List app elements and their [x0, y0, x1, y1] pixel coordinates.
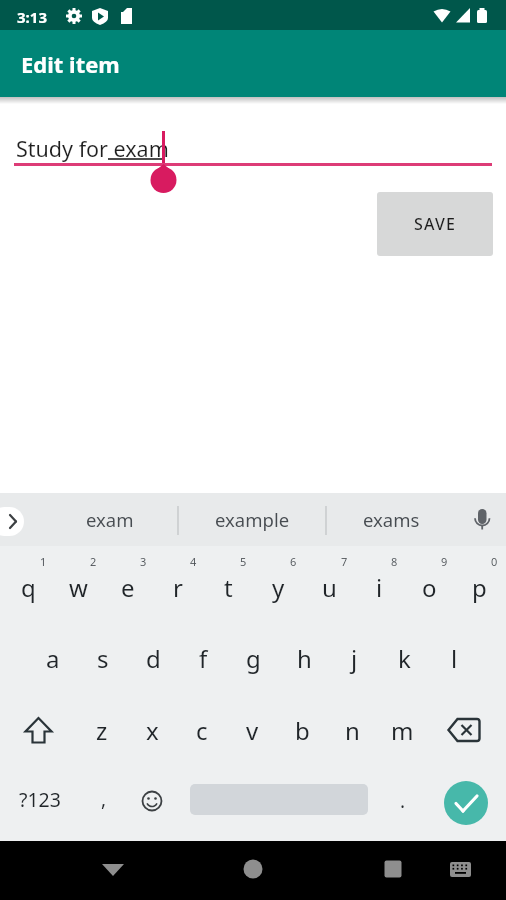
button[interactable] — [0, 507, 24, 536]
staticText: exams — [363, 507, 420, 532]
button[interactable]: example — [180, 493, 324, 546]
staticText: x — [146, 714, 159, 747]
button[interactable] — [130, 771, 174, 831]
staticText: ?123 — [19, 786, 61, 813]
button[interactable]: q — [3, 556, 53, 618]
staticText: Edit item — [21, 49, 120, 79]
staticText: y — [272, 571, 285, 604]
staticText: c — [196, 714, 208, 747]
staticText: 3:13 — [17, 7, 47, 27]
button[interactable] — [444, 852, 480, 886]
staticText: r — [173, 571, 183, 604]
button[interactable]: h — [279, 627, 329, 689]
button[interactable]: w — [53, 556, 103, 618]
button[interactable]: v — [227, 699, 277, 761]
button[interactable]: d — [128, 627, 178, 689]
button[interactable] — [441, 699, 491, 761]
button[interactable]: k — [379, 627, 429, 689]
button[interactable]: s — [78, 627, 128, 689]
button[interactable]: exams — [328, 493, 454, 546]
staticText: example — [215, 507, 290, 532]
staticText: , — [101, 786, 107, 812]
staticText: Study for exam — [16, 134, 169, 163]
staticText: 0 — [491, 554, 498, 569]
staticText: v — [246, 714, 259, 747]
button[interactable]: i — [354, 556, 404, 618]
staticText: 6 — [290, 554, 297, 569]
staticText: u — [322, 571, 337, 604]
staticText: exam — [86, 507, 134, 532]
staticText: m — [391, 714, 414, 747]
staticText: SAVE — [414, 213, 457, 235]
staticText: a — [46, 642, 60, 675]
button[interactable] — [373, 849, 413, 889]
button[interactable]: y — [253, 556, 303, 618]
staticText: q — [21, 571, 36, 604]
button[interactable]: j — [329, 627, 379, 689]
button[interactable]: g — [228, 627, 278, 689]
staticText: 1 — [40, 554, 47, 569]
staticText: . — [400, 788, 406, 814]
button[interactable]: , — [90, 773, 118, 825]
staticText: 9 — [441, 554, 448, 569]
staticText: 4 — [190, 554, 197, 569]
staticText: 5 — [240, 554, 247, 569]
staticText: 8 — [391, 554, 398, 569]
staticText: g — [246, 642, 261, 675]
button[interactable]: n — [327, 699, 377, 761]
button[interactable] — [233, 849, 273, 889]
button[interactable]: z — [77, 699, 127, 761]
button[interactable]: p — [454, 556, 504, 618]
staticText: s — [97, 642, 109, 675]
button[interactable]: . — [389, 773, 417, 829]
button[interactable]: r — [153, 556, 203, 618]
button[interactable] — [444, 781, 488, 825]
button[interactable]: f — [178, 627, 228, 689]
staticText: n — [345, 714, 360, 747]
staticText: 3 — [140, 554, 147, 569]
button[interactable]: ?123 — [12, 769, 68, 829]
button[interactable]: x — [127, 699, 177, 761]
staticText: w — [69, 571, 88, 604]
staticText: 7 — [341, 554, 348, 569]
staticText: k — [398, 642, 411, 675]
button[interactable] — [13, 699, 63, 761]
button[interactable]: m — [377, 699, 427, 761]
button[interactable] — [93, 849, 133, 889]
button[interactable]: c — [177, 699, 227, 761]
staticText: j — [351, 642, 358, 675]
button[interactable]: e — [103, 556, 153, 618]
staticText: 2 — [90, 554, 97, 569]
staticText: o — [422, 571, 437, 604]
button[interactable]: a — [28, 627, 78, 689]
button[interactable]: t — [203, 556, 253, 618]
staticText: b — [295, 714, 310, 747]
button[interactable]: SAVE — [377, 192, 493, 256]
staticText: l — [451, 642, 458, 675]
staticText: d — [146, 642, 161, 675]
staticText: z — [96, 714, 108, 747]
staticText: i — [376, 571, 383, 604]
staticText: p — [472, 571, 487, 604]
staticText: f — [199, 642, 208, 675]
button[interactable]: u — [304, 556, 354, 618]
button[interactable]: o — [404, 556, 454, 618]
staticText: t — [224, 571, 233, 604]
button[interactable]: b — [277, 699, 327, 761]
staticText: h — [297, 642, 312, 675]
button[interactable]: l — [429, 627, 479, 689]
staticText: e — [121, 571, 135, 604]
button[interactable]: exam — [45, 493, 175, 546]
